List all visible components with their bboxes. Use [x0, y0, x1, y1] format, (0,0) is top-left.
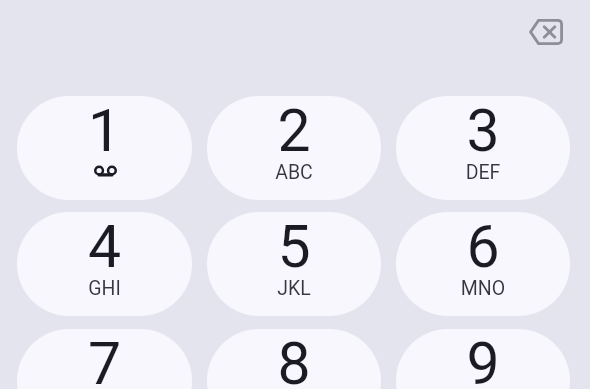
staticText: GHI — [17, 277, 192, 300]
staticText: 4 — [17, 212, 192, 281]
staticText: 9 — [396, 329, 570, 389]
staticText: 3 — [396, 96, 570, 165]
staticText: ABC — [207, 161, 381, 184]
staticText: MNO — [396, 277, 570, 300]
staticText: 6 — [396, 212, 570, 281]
button[interactable]: 1 — [17, 96, 192, 200]
button[interactable]: 2 — [207, 96, 381, 200]
button[interactable]: 4 — [17, 212, 192, 316]
button[interactable]: 5 — [207, 212, 381, 316]
button[interactable]: 3 — [396, 96, 570, 200]
staticText: JKL — [207, 277, 381, 300]
button[interactable]: 8 — [207, 329, 381, 389]
button[interactable]: 9 — [396, 329, 570, 389]
button[interactable]: 6 — [396, 212, 570, 316]
button[interactable]: Backspace — [521, 8, 569, 56]
button[interactable]: 7 — [17, 329, 192, 389]
staticText: 2 — [207, 96, 381, 165]
staticText: 7 — [17, 329, 192, 389]
staticText: 8 — [207, 329, 381, 389]
staticText: DEF — [396, 161, 570, 184]
staticText: 1 — [17, 96, 192, 165]
staticText: 5 — [207, 212, 381, 281]
